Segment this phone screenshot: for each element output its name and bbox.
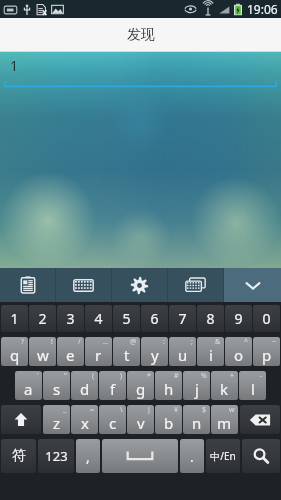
staticText: 符 [12,447,26,465]
staticText: i [209,345,213,365]
button[interactable]: ~ [253,337,280,366]
staticText: ~ [272,337,277,347]
staticText: u [178,345,188,365]
staticText: 4 [94,309,103,328]
button[interactable]: 4 [85,305,112,332]
staticText: ! [51,337,53,347]
button[interactable]: + [211,371,238,400]
button[interactable]: 3 [57,305,84,332]
staticText: | [147,405,151,415]
button[interactable]: \ [99,405,126,434]
staticText: ) [120,371,123,381]
button[interactable]: ( [71,371,98,400]
staticText: 8 [206,309,215,328]
button[interactable]: Shift [1,405,41,434]
staticText: v [137,413,145,433]
button[interactable]: 8 [197,305,224,332]
staticText: . [190,447,194,466]
button[interactable]: % [183,371,210,400]
button[interactable]: w [211,405,238,434]
staticText: : [163,337,165,347]
staticText: \ [120,405,123,415]
button[interactable]: @ [113,337,140,366]
button[interactable]: 6 [141,305,168,332]
button[interactable]: 0 [253,305,280,332]
button[interactable]: 5 [113,305,140,332]
button[interactable]: Keyboard [56,268,111,302]
button[interactable]: 2 [29,305,56,332]
button[interactable]: : [141,337,168,366]
staticText: q [10,345,20,365]
staticText: n [192,413,202,433]
staticText: ¥ [174,405,179,415]
button[interactable]: , [76,439,100,473]
staticText: t [124,345,130,365]
staticText: ? [21,337,25,347]
staticText: % [201,371,207,381]
button[interactable]: Clipboard [0,268,55,302]
staticText: x [81,413,89,433]
button[interactable]: * [127,371,154,400]
staticText: & [215,337,221,347]
staticText: w [37,345,49,365]
staticText: ( [92,371,95,381]
button[interactable]: Switch keyboard [168,268,223,302]
staticText: s [53,379,61,399]
staticText: k [220,379,229,399]
button[interactable]: / [57,337,84,366]
button[interactable]: ! [29,337,56,366]
staticText: - [260,371,263,381]
staticText: 123 [45,447,68,465]
staticText: 2 [38,309,47,328]
button[interactable]: & [197,337,224,366]
button[interactable]: 9 [225,305,252,332]
button[interactable]: Settings [112,268,167,302]
staticText: b [164,413,174,433]
button[interactable]: ; [169,337,196,366]
staticText: # [174,371,179,381]
button[interactable]: Space [102,439,178,473]
staticText: $ [202,405,207,415]
button[interactable]: Hide keyboard [224,268,281,302]
button[interactable]: 1 [1,305,28,332]
staticText: = [90,405,95,415]
button[interactable]: 123 [38,439,74,473]
staticText: 3 [66,309,75,328]
staticText: , [86,447,90,466]
button[interactable]: Backspace [240,405,280,434]
button[interactable]: _ [43,405,70,434]
button[interactable]: - [239,371,266,400]
button[interactable]: 1 [4,56,277,95]
button[interactable]: ) [99,371,126,400]
button[interactable]: # [155,371,182,400]
button[interactable]: ? [1,337,28,366]
staticText: j [195,379,199,399]
button[interactable]: 7 [169,305,196,332]
staticText: ' [37,371,39,381]
staticText: 6 [150,309,159,328]
button[interactable]: ¥ [155,405,182,434]
button[interactable]: 符 [1,439,36,473]
staticText: _ [63,405,67,415]
staticText: z [53,413,61,433]
staticText: * [147,371,151,381]
button[interactable]: " [43,371,70,400]
staticText: 19:06 [247,1,278,17]
button[interactable]: Search [242,439,280,473]
button[interactable]: … [85,337,112,366]
button[interactable]: ^ [225,337,252,366]
button[interactable]: $ [183,405,210,434]
staticText: f [110,379,116,399]
staticText: … [103,337,109,347]
button[interactable]: | [127,405,154,434]
staticText: e [66,345,75,365]
staticText: c [109,413,117,433]
button[interactable]: ' [15,371,42,400]
button[interactable]: . [180,439,204,473]
staticText: l [251,379,255,399]
staticText: o [234,345,244,365]
staticText: 发现 [127,26,155,44]
button[interactable]: 中/En [206,439,240,473]
staticText: / [78,337,81,347]
button[interactable]: = [71,405,98,434]
